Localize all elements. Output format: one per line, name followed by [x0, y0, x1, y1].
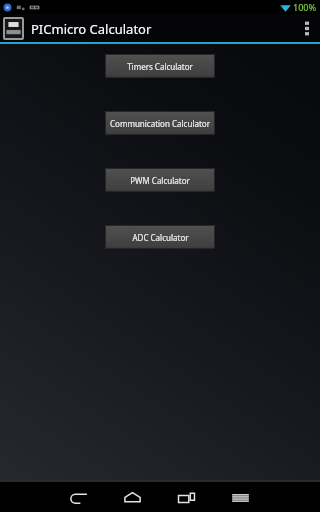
staticText: ADC Calculator — [132, 232, 189, 243]
staticText: 100% — [293, 1, 317, 13]
button[interactable]: Home — [120, 485, 144, 509]
button[interactable]: PWM Calculator — [105, 168, 215, 192]
button[interactable]: Communication Calculator — [105, 111, 215, 135]
button[interactable]: Timers Calculator — [105, 54, 215, 78]
staticText: Communication Calculator — [110, 118, 210, 129]
button[interactable]: Menu — [228, 485, 252, 509]
button[interactable]: More options — [294, 15, 320, 41]
button[interactable]: Recents — [174, 485, 198, 509]
staticText: PICmicro Calculator — [31, 20, 152, 38]
button[interactable]: ADC Calculator — [105, 225, 215, 249]
staticText: Timers Calculator — [127, 61, 193, 72]
staticText: PWM Calculator — [130, 175, 190, 186]
button[interactable]: Back — [66, 485, 90, 509]
